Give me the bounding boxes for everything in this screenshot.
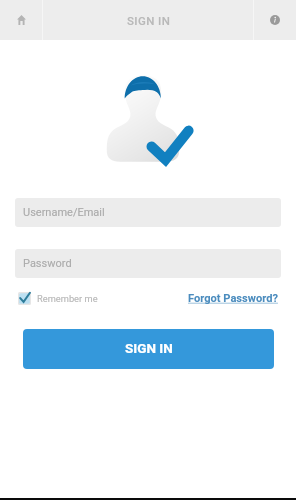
button[interactable]: SIGN IN — [23, 329, 274, 369]
button[interactable]: Home — [0, 0, 42, 40]
staticText: Remember me — [37, 293, 98, 304]
button[interactable]: Forgot Password? — [188, 292, 278, 305]
button[interactable]: Password — [15, 249, 281, 278]
staticText: SIGN IN — [125, 340, 173, 356]
staticText: Username/Email — [23, 206, 105, 219]
button[interactable]: Remember me — [18, 292, 98, 305]
button[interactable]: Username/Email — [15, 198, 281, 227]
button[interactable]: Info — [254, 0, 296, 40]
staticText: Password — [23, 257, 72, 270]
staticText: SIGN IN — [127, 14, 171, 27]
